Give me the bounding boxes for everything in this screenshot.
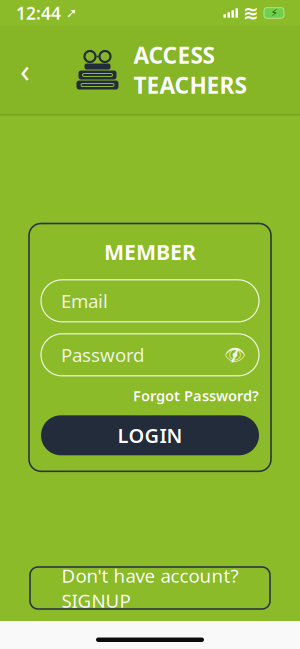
button[interactable]: Email	[41, 280, 259, 322]
staticText: MEMBER	[104, 237, 196, 266]
button[interactable]: Back	[8, 48, 42, 92]
staticText: ACCESS TEACHERS	[133, 40, 246, 100]
staticText: Forgot Password?	[133, 386, 259, 405]
staticText: Don't have account? SIGNUP	[61, 563, 238, 613]
staticText: ⚡︎	[270, 7, 277, 19]
button[interactable]: Don't have account? SIGNUP	[30, 567, 270, 609]
button[interactable]: Show password	[223, 343, 247, 367]
staticText: /	[231, 342, 239, 368]
staticText: Email	[61, 288, 108, 313]
button[interactable]: LOGIN	[41, 415, 259, 455]
staticText: LOGIN	[117, 422, 182, 449]
staticText: ➚	[61, 5, 77, 20]
staticText: ≋	[243, 2, 259, 24]
staticText: 👁	[224, 345, 246, 365]
staticText: 12:44	[16, 1, 61, 24]
staticText: Password	[61, 342, 144, 367]
button[interactable]: Password	[41, 334, 259, 376]
staticText: ‹	[20, 49, 30, 91]
button[interactable]: Forgot Password?	[133, 380, 259, 411]
